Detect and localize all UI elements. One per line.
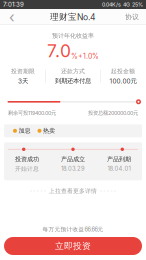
staticText: 协议 — [125, 13, 139, 21]
staticText: 投资成功 — [15, 155, 39, 163]
staticText: 还款方式 — [61, 67, 85, 75]
staticText: 预计年化收益率 — [52, 32, 94, 40]
staticText: 7.0 — [47, 41, 71, 62]
staticText: 投资总额200000.00元 — [88, 110, 138, 116]
staticText: 25% — [132, 1, 143, 8]
button[interactable]: 协议 — [121, 9, 143, 25]
staticText: %+1.0% — [71, 52, 99, 60]
staticText: 加息 — [18, 127, 30, 135]
staticText: 立即投资 — [55, 240, 91, 252]
staticText: 100.00元 — [109, 77, 136, 85]
staticText: 上拉查看更多详情 — [49, 187, 97, 195]
staticText: 起投金额 — [111, 67, 135, 75]
staticText: 理财宝No.4 — [50, 12, 96, 22]
staticText: ‹ — [9, 8, 15, 26]
staticText: 3天 — [18, 77, 28, 85]
staticText: 7:01:39 — [3, 1, 24, 8]
staticText: 0.04K/s — [102, 1, 121, 8]
button[interactable]: 立即投资 — [4, 237, 142, 255]
staticText: 投资期限 — [11, 67, 35, 75]
staticText: 18.04.01 — [107, 165, 130, 172]
staticText: 产品到期 — [107, 155, 131, 163]
staticText: 18.03.29 — [61, 165, 85, 172]
button[interactable]: Back — [3, 9, 21, 25]
staticText: 4G — [123, 1, 130, 8]
staticText: 每万元预计收益66.66元 — [42, 226, 103, 233]
staticText: 热卖 — [43, 127, 55, 135]
staticText: 到期还本付息 — [55, 77, 91, 85]
staticText: 开始计息 — [15, 165, 39, 172]
staticText: 产品成立 — [61, 155, 85, 163]
staticText: 剩余可投119400.00元 — [8, 110, 56, 116]
